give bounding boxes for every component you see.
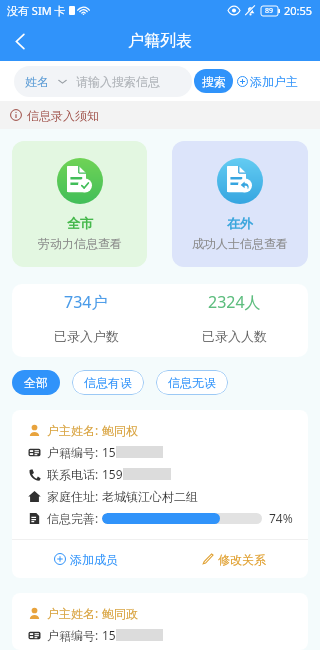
staticText: 在外 bbox=[227, 215, 253, 231]
staticText: 劳动力信息查看 bbox=[38, 236, 122, 251]
button[interactable]: 返回 bbox=[0, 21, 40, 61]
staticText: 成功人士信息查看 bbox=[192, 236, 288, 251]
staticText: 没有 SIM 卡 bbox=[7, 3, 66, 18]
staticText: 家庭住址: bbox=[47, 488, 102, 504]
staticText: 联系电话: bbox=[47, 466, 102, 482]
staticText: 信息无误 bbox=[168, 375, 216, 390]
staticText: 信息录入须知 bbox=[27, 108, 99, 123]
button[interactable]: 姓名 bbox=[14, 66, 192, 97]
staticText: 老城镇江心村二组 bbox=[102, 489, 198, 504]
button[interactable]: 2324人 bbox=[160, 284, 308, 357]
button[interactable]: 信息无误 bbox=[156, 370, 228, 395]
staticText: 全市 bbox=[67, 215, 93, 231]
staticText: 20:55 bbox=[284, 3, 313, 18]
staticText: 户籍编号: bbox=[47, 627, 102, 643]
button[interactable]: 添加成员 bbox=[12, 540, 160, 578]
button[interactable]: 户主姓名: bbox=[12, 593, 308, 650]
staticText: 添加成员 bbox=[70, 552, 118, 567]
staticText: 鲍同权 bbox=[102, 423, 138, 438]
staticText: 鲍同政 bbox=[102, 606, 138, 621]
staticText: 户主姓名: bbox=[47, 605, 102, 621]
staticText: 修改关系 bbox=[218, 552, 266, 567]
staticText: 请输入搜索信息 bbox=[76, 74, 160, 89]
button[interactable]: 在外 bbox=[172, 141, 308, 267]
staticText: 户主姓名: bbox=[47, 422, 102, 438]
staticText: 89 bbox=[265, 6, 274, 16]
staticText: 已录入户数 bbox=[54, 328, 119, 344]
staticText: 全部 bbox=[24, 375, 48, 390]
button[interactable]: 添加户主 bbox=[237, 68, 298, 95]
staticText: 159 bbox=[102, 466, 123, 482]
staticText: 2324人 bbox=[208, 291, 261, 313]
staticText: 15 bbox=[102, 627, 116, 643]
staticText: 搜索 bbox=[202, 74, 226, 89]
staticText: 15 bbox=[102, 444, 116, 460]
button[interactable]: 信息有误 bbox=[72, 370, 144, 395]
staticText: 添加户主 bbox=[250, 74, 298, 89]
staticText: 74% bbox=[269, 510, 293, 526]
staticText: 姓名 bbox=[25, 74, 49, 89]
button[interactable]: 全部 bbox=[12, 370, 60, 395]
button[interactable]: 全市 bbox=[12, 141, 147, 267]
staticText: 户籍列表 bbox=[128, 31, 192, 51]
button[interactable]: 搜索 bbox=[194, 69, 233, 93]
button[interactable]: 户主姓名: bbox=[12, 410, 308, 578]
button[interactable]: 修改关系 bbox=[160, 540, 308, 578]
staticText: 信息有误 bbox=[84, 375, 132, 390]
staticText: 信息完善: bbox=[47, 510, 102, 526]
button[interactable]: 信息录入须知 bbox=[0, 101, 320, 129]
staticText: 已录入人数 bbox=[202, 328, 267, 344]
staticText: 户籍编号: bbox=[47, 444, 102, 460]
staticText: 734户 bbox=[64, 291, 108, 313]
button[interactable]: 734户 bbox=[12, 284, 160, 357]
